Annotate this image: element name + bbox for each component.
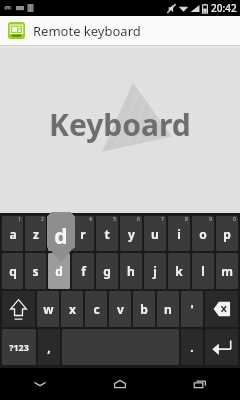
button[interactable]: Backspace bbox=[205, 291, 238, 327]
staticText: 9 bbox=[209, 216, 212, 223]
staticText: Keyboard bbox=[49, 104, 191, 145]
button[interactable]: Recent apps bbox=[160, 368, 240, 400]
staticText: t bbox=[104, 226, 110, 242]
button[interactable]: q bbox=[2, 253, 23, 289]
staticText: w bbox=[43, 301, 54, 317]
button[interactable]: k bbox=[168, 253, 190, 289]
staticText: . bbox=[190, 339, 194, 355]
staticText: j bbox=[153, 263, 157, 279]
staticText: 6 bbox=[137, 216, 140, 223]
staticText: b bbox=[140, 301, 148, 317]
button[interactable]: i bbox=[168, 216, 190, 251]
button[interactable]: e bbox=[48, 216, 70, 251]
staticText: a bbox=[9, 226, 17, 242]
staticText: 8 bbox=[185, 216, 188, 223]
staticText: 5 bbox=[113, 216, 116, 223]
staticText: Remote keyboard bbox=[33, 22, 141, 40]
button[interactable]: h bbox=[120, 253, 142, 289]
button[interactable]: Remote keyboard bbox=[0, 16, 240, 45]
staticText: f bbox=[81, 263, 86, 279]
staticText: r bbox=[80, 226, 86, 242]
staticText: d bbox=[55, 263, 63, 279]
staticText: p bbox=[223, 226, 231, 242]
staticText: u bbox=[151, 226, 159, 242]
button[interactable]: t bbox=[96, 216, 118, 251]
button[interactable]: b bbox=[133, 291, 155, 327]
button[interactable]: f bbox=[72, 253, 94, 289]
button[interactable]: a bbox=[2, 216, 23, 251]
button[interactable]: s bbox=[25, 253, 46, 289]
button[interactable]: Shift bbox=[2, 291, 35, 327]
button[interactable]: d bbox=[48, 253, 70, 289]
staticText: e bbox=[55, 226, 63, 242]
staticText: k bbox=[175, 263, 183, 279]
staticText: o bbox=[199, 226, 207, 242]
staticText: 4 bbox=[89, 216, 92, 223]
button[interactable]: m bbox=[216, 253, 238, 289]
staticText: y bbox=[128, 226, 135, 242]
button[interactable]: Enter bbox=[205, 329, 238, 365]
button[interactable]: . bbox=[181, 329, 203, 365]
button[interactable]: w bbox=[37, 291, 59, 327]
button[interactable]: z bbox=[25, 216, 46, 251]
button[interactable]: Hide keyboard bbox=[0, 368, 80, 400]
button[interactable]: l bbox=[192, 253, 214, 289]
button[interactable]: r bbox=[72, 216, 94, 251]
button[interactable]: c bbox=[85, 291, 107, 327]
button[interactable]: o bbox=[192, 216, 214, 251]
staticText: ?123 bbox=[9, 341, 29, 353]
button[interactable]: ' bbox=[181, 291, 203, 327]
button[interactable]: g bbox=[96, 253, 118, 289]
button[interactable]: n bbox=[157, 291, 179, 327]
button[interactable]: , bbox=[38, 329, 60, 365]
button[interactable]: j bbox=[144, 253, 166, 289]
staticText: 20:42 bbox=[211, 1, 237, 15]
button[interactable]: x bbox=[61, 291, 83, 327]
staticText: 0 bbox=[233, 216, 236, 223]
staticText: v bbox=[117, 301, 124, 317]
staticText: z bbox=[33, 226, 39, 242]
staticText: l bbox=[201, 263, 205, 279]
button[interactable]: p bbox=[216, 216, 238, 251]
staticText: q bbox=[9, 263, 17, 279]
staticText: m bbox=[221, 263, 233, 279]
staticText: h bbox=[127, 263, 135, 279]
button[interactable]: ?123 bbox=[2, 329, 36, 365]
button[interactable]: u bbox=[144, 216, 166, 251]
staticText: ' bbox=[190, 301, 194, 317]
staticText: 2 bbox=[41, 216, 44, 223]
staticText: s bbox=[32, 263, 39, 279]
staticText: 7 bbox=[161, 216, 164, 223]
button[interactable]: Home bbox=[80, 368, 160, 400]
staticText: n bbox=[164, 301, 172, 317]
staticText: g bbox=[103, 263, 111, 279]
staticText: 1 bbox=[18, 216, 21, 223]
staticText: c bbox=[93, 301, 100, 317]
button[interactable]: v bbox=[109, 291, 131, 327]
staticText: d bbox=[54, 222, 68, 251]
staticText: , bbox=[47, 339, 51, 355]
staticText: x bbox=[69, 301, 76, 317]
button[interactable]: y bbox=[120, 216, 142, 251]
staticText: i bbox=[177, 226, 181, 242]
